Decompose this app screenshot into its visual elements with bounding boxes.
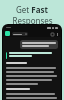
button[interactable]: More options [55,32,59,36]
button[interactable] [20,40,58,49]
button[interactable]: New chat [50,32,54,36]
button[interactable]: App logo [5,31,10,36]
staticText: Responses [12,15,53,26]
staticText: Get Fast [16,4,48,15]
button[interactable] [12,32,28,36]
